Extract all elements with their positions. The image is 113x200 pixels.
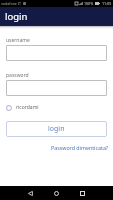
button[interactable]: ricordami	[6, 103, 39, 112]
button[interactable]: Back	[23, 186, 38, 200]
staticText: 11:05	[102, 1, 112, 6]
staticText: vodafone IT	[1, 1, 22, 6]
button[interactable]: Password dimenticata?	[51, 144, 109, 151]
button[interactable]: Recents	[75, 186, 90, 200]
staticText: login	[5, 10, 28, 23]
staticText: ricordami	[16, 104, 39, 111]
button[interactable]: Home	[49, 186, 64, 200]
button[interactable]	[6, 80, 107, 96]
staticText: login	[48, 124, 65, 134]
staticText: username	[6, 37, 30, 44]
staticText: 100%	[84, 1, 94, 6]
staticText: password	[6, 72, 29, 79]
button[interactable]: login	[6, 121, 107, 137]
button[interactable]	[6, 45, 107, 61]
